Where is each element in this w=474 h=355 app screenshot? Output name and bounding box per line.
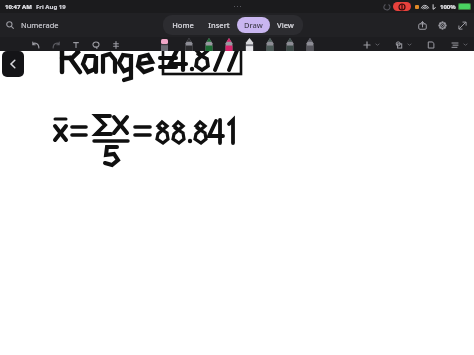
button[interactable]: Highlighter xyxy=(245,38,254,51)
staticText: View xyxy=(277,20,294,30)
button[interactable]: Lasso xyxy=(90,39,101,50)
button[interactable]: Expand xyxy=(456,19,469,32)
button[interactable]: Pen xyxy=(205,38,213,51)
staticText: 100% xyxy=(440,3,456,11)
button[interactable]: Text xyxy=(70,39,81,50)
button[interactable]: Back xyxy=(2,51,24,77)
button[interactable]: Undo xyxy=(30,39,41,50)
button[interactable]: Insert xyxy=(201,17,237,33)
button[interactable]: Pen xyxy=(286,38,294,51)
staticText: Draw xyxy=(244,20,263,30)
button[interactable]: Add xyxy=(361,39,372,50)
staticText: Home xyxy=(172,20,194,30)
staticText: Fri Aug 19 xyxy=(36,3,66,11)
button[interactable]: Redo xyxy=(50,39,61,50)
button[interactable]: Settings xyxy=(436,19,449,32)
button[interactable]: Pen xyxy=(225,38,233,51)
button[interactable]: Pen xyxy=(306,38,314,51)
button[interactable]: Draw xyxy=(237,17,270,33)
button[interactable]: Pen xyxy=(266,38,274,51)
staticText: Numerade xyxy=(21,20,59,30)
button[interactable]: Pen xyxy=(185,38,193,51)
button[interactable]: Note xyxy=(425,39,436,50)
button[interactable]: Share xyxy=(416,19,429,32)
button[interactable]: Ruler xyxy=(110,39,121,50)
staticText: Insert xyxy=(208,20,230,30)
button[interactable]: View xyxy=(270,17,301,33)
button[interactable]: Home xyxy=(165,17,201,33)
button[interactable]: Eraser xyxy=(161,39,168,51)
button[interactable]: Shapes xyxy=(393,39,404,50)
button[interactable]: Search xyxy=(6,20,59,30)
other: Search xyxy=(6,21,14,29)
button[interactable]: Layers xyxy=(449,39,460,50)
staticText: 10:47 AM xyxy=(5,3,32,11)
